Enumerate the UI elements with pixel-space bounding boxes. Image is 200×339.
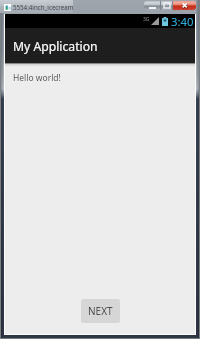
button[interactable]: NEXT [81,299,120,323]
staticText: Hello world! [13,72,61,84]
button[interactable]: Maximize [161,1,172,10]
staticText: My Application [13,38,98,55]
button[interactable]: Close [173,1,196,10]
staticText: 3G [143,16,150,23]
staticText: NEXT [88,304,113,318]
button[interactable]: Minimize [144,1,160,10]
staticText: 5554:4inch_icecream [13,3,74,11]
staticText: 3:40 [171,14,194,28]
